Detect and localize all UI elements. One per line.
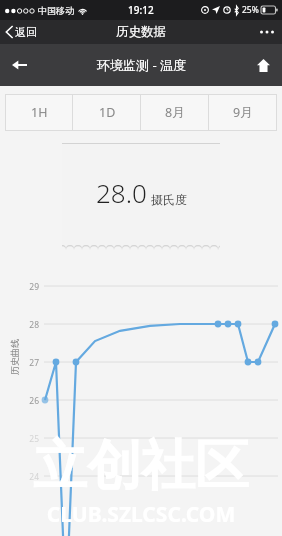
- button[interactable]: 28.0: [62, 143, 220, 253]
- button[interactable]: Home: [245, 49, 282, 82]
- staticText: 历史数据: [116, 24, 166, 40]
- button[interactable]: Back: [0, 49, 39, 81]
- staticText: CLUB.SZLCSC.COM: [0, 500, 282, 529]
- staticText: 环境监测 - 温度: [97, 56, 186, 74]
- staticText: 26: [25, 395, 39, 407]
- staticText: 8月: [165, 104, 185, 121]
- staticText: 1H: [31, 104, 48, 121]
- staticText: 1D: [99, 104, 116, 121]
- button[interactable]: More options: [252, 24, 282, 40]
- button[interactable]: 9月: [209, 94, 277, 131]
- button[interactable]: 1H: [5, 94, 73, 131]
- staticText: 29: [25, 281, 39, 293]
- staticText: 返回: [15, 25, 37, 39]
- button[interactable]: 返回: [0, 22, 45, 42]
- staticText: 立创社区: [0, 432, 282, 500]
- staticText: 28.0: [96, 175, 147, 210]
- staticText: 27: [25, 357, 39, 369]
- staticText: 24: [25, 471, 39, 483]
- button[interactable]: 8月: [141, 94, 209, 131]
- button[interactable]: 1D: [73, 94, 141, 131]
- staticText: 25: [25, 433, 39, 445]
- staticText: 9月: [233, 104, 253, 121]
- staticText: 历史曲线: [9, 339, 20, 375]
- staticText: 28: [25, 319, 39, 331]
- staticText: 中国移动: [38, 5, 74, 16]
- staticText: 摄氏度: [151, 192, 187, 207]
- staticText: 25%: [242, 4, 259, 16]
- staticText: 19:12: [128, 3, 154, 17]
